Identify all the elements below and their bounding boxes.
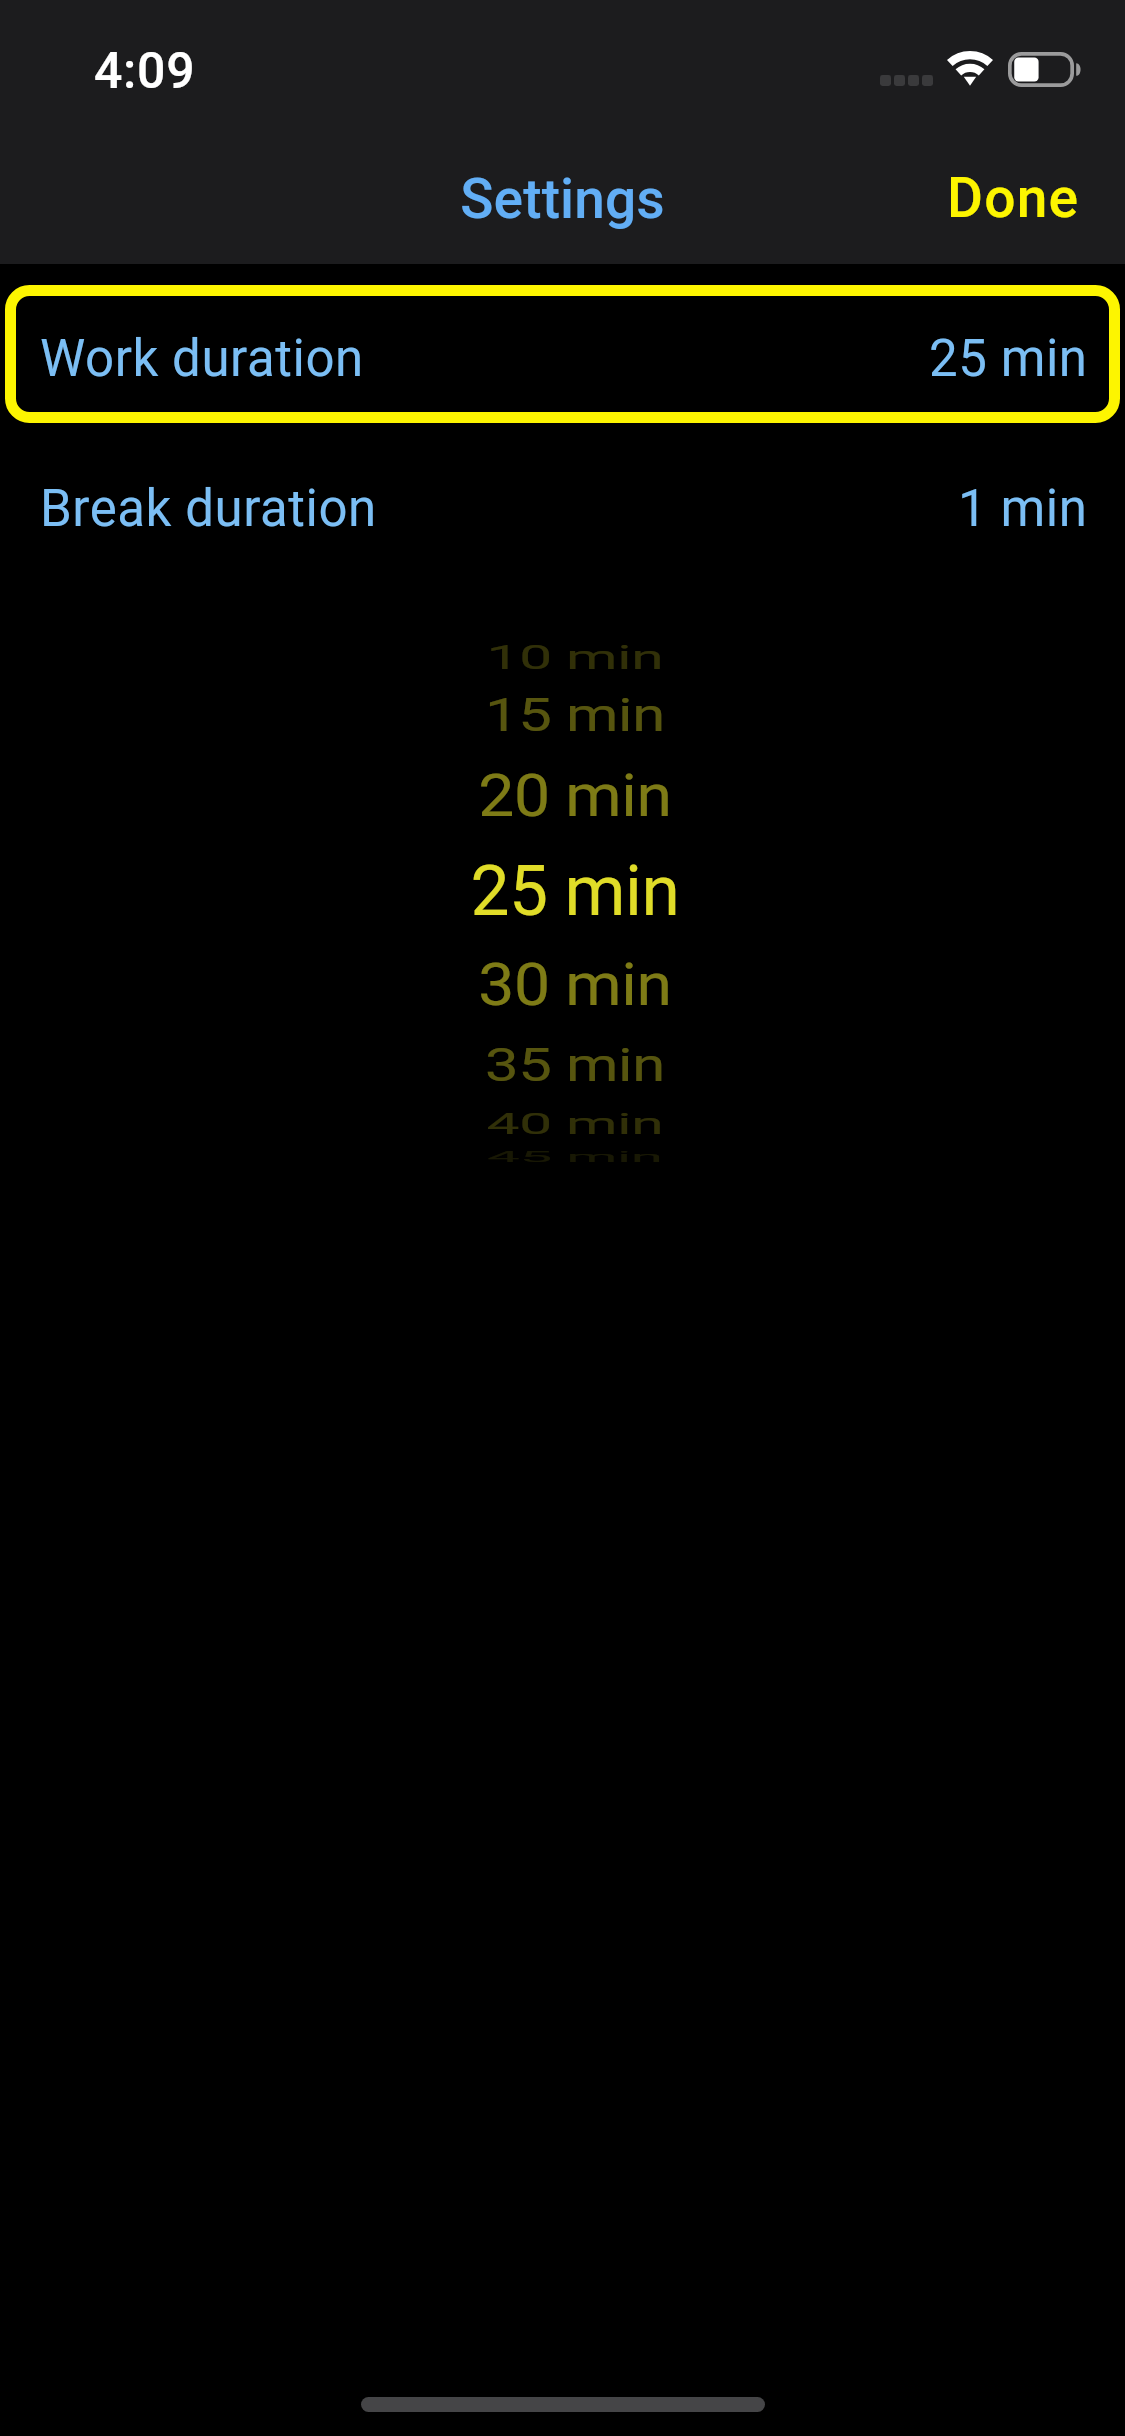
staticText: 10 min [486, 638, 664, 677]
staticText: 1 min [958, 479, 1088, 539]
staticText: 25 min [929, 329, 1088, 389]
staticText: 40 min [486, 1106, 664, 1141]
button[interactable] [0, 686, 1125, 756]
staticText: Settings [0, 167, 1125, 231]
staticText: 4:09 [94, 42, 196, 101]
button[interactable] [0, 1094, 1125, 1140]
staticText: Break duration [40, 479, 377, 539]
staticText: Done [947, 166, 1080, 230]
staticText: Work duration [40, 329, 364, 389]
button[interactable] [0, 938, 1125, 1025]
button[interactable] [0, 620, 1125, 686]
other: Wi-Fi [947, 51, 993, 85]
other: Battery [1008, 52, 1082, 87]
staticText: 15 min [485, 688, 665, 742]
button[interactable]: Break duration [0, 440, 1125, 578]
other: Cellular signal [880, 75, 933, 86]
button[interactable]: Work duration [0, 290, 1125, 428]
staticText: 20 min [478, 762, 672, 831]
staticText: 35 min [485, 1038, 665, 1092]
staticText: 25 min [470, 851, 680, 932]
staticText: 30 min [478, 950, 672, 1019]
button[interactable] [0, 1025, 1125, 1095]
button[interactable] [0, 844, 1125, 938]
button[interactable]: Done [907, 141, 1125, 255]
button[interactable] [0, 756, 1125, 844]
staticText: 45 min [487, 1148, 663, 1165]
